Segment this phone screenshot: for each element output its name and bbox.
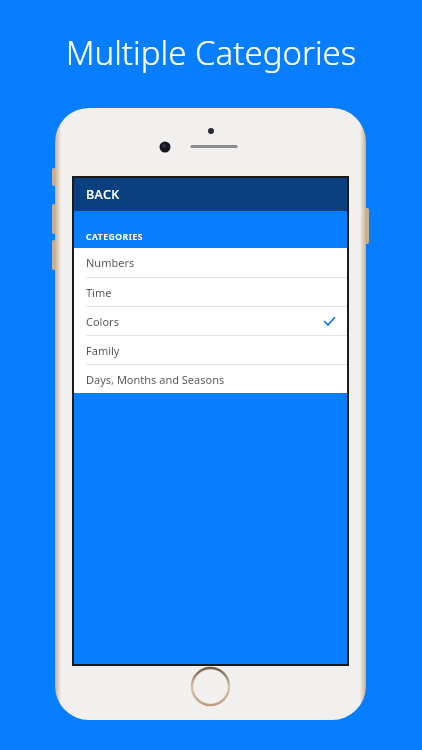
staticText: Time bbox=[86, 285, 112, 300]
button[interactable]: Family bbox=[74, 336, 347, 364]
button[interactable]: Numbers bbox=[74, 248, 347, 277]
button[interactable]: Colors bbox=[74, 307, 347, 335]
staticText: Multiple Categories bbox=[0, 30, 422, 75]
staticText: Colors bbox=[86, 314, 119, 329]
staticText: Numbers bbox=[86, 255, 135, 270]
staticText: BACK bbox=[86, 186, 120, 203]
button[interactable]: Days, Months and Seasons bbox=[74, 365, 347, 393]
button[interactable]: Home bbox=[191, 667, 230, 706]
staticText: Days, Months and Seasons bbox=[86, 372, 225, 387]
staticText: Family bbox=[86, 343, 120, 358]
button[interactable]: Time bbox=[74, 278, 347, 306]
button[interactable]: BACK bbox=[74, 178, 347, 211]
staticText: CATEGORIES bbox=[86, 231, 144, 243]
